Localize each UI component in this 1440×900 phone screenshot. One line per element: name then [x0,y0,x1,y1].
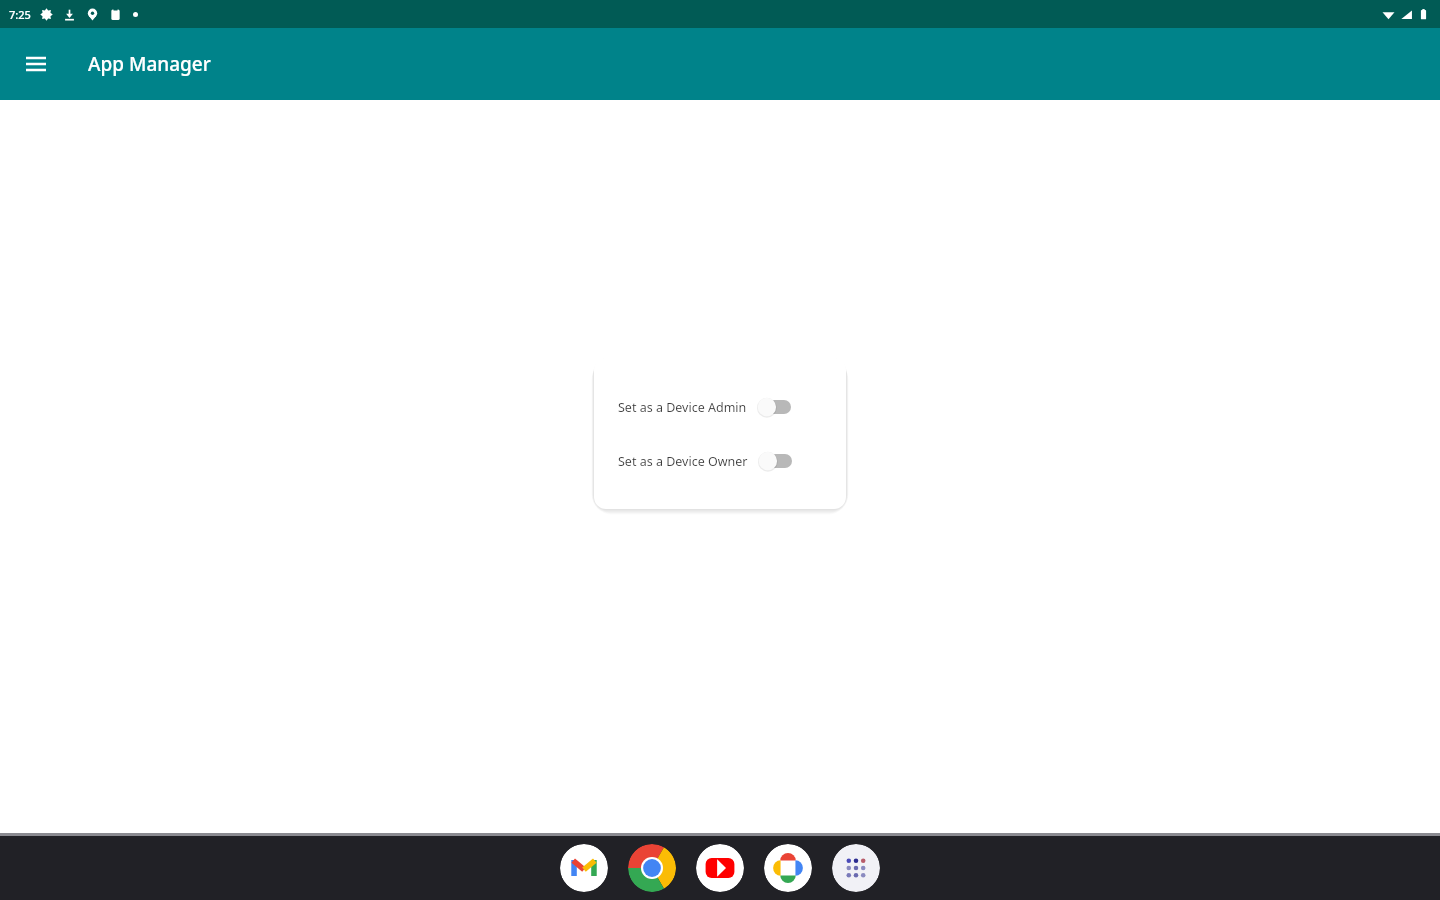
button[interactable]: YouTube [696,844,744,892]
button[interactable]: All apps [832,844,880,892]
staticText: Set as a Device Owner [618,453,748,470]
button[interactable]: Set as a Device Admin [594,394,846,420]
button[interactable]: Open navigation menu [12,40,60,88]
staticText: App Manager [88,51,211,77]
button[interactable]: Google Photos [764,844,812,892]
staticText: 7:25 [9,7,31,22]
button[interactable]: Toggle off [757,397,791,417]
button[interactable]: Chrome [628,844,676,892]
button[interactable]: Toggle off [758,451,792,471]
button[interactable]: Gmail [560,844,608,892]
staticText: Set as a Device Admin [618,399,747,416]
button[interactable]: Set as a Device Owner [594,448,846,474]
